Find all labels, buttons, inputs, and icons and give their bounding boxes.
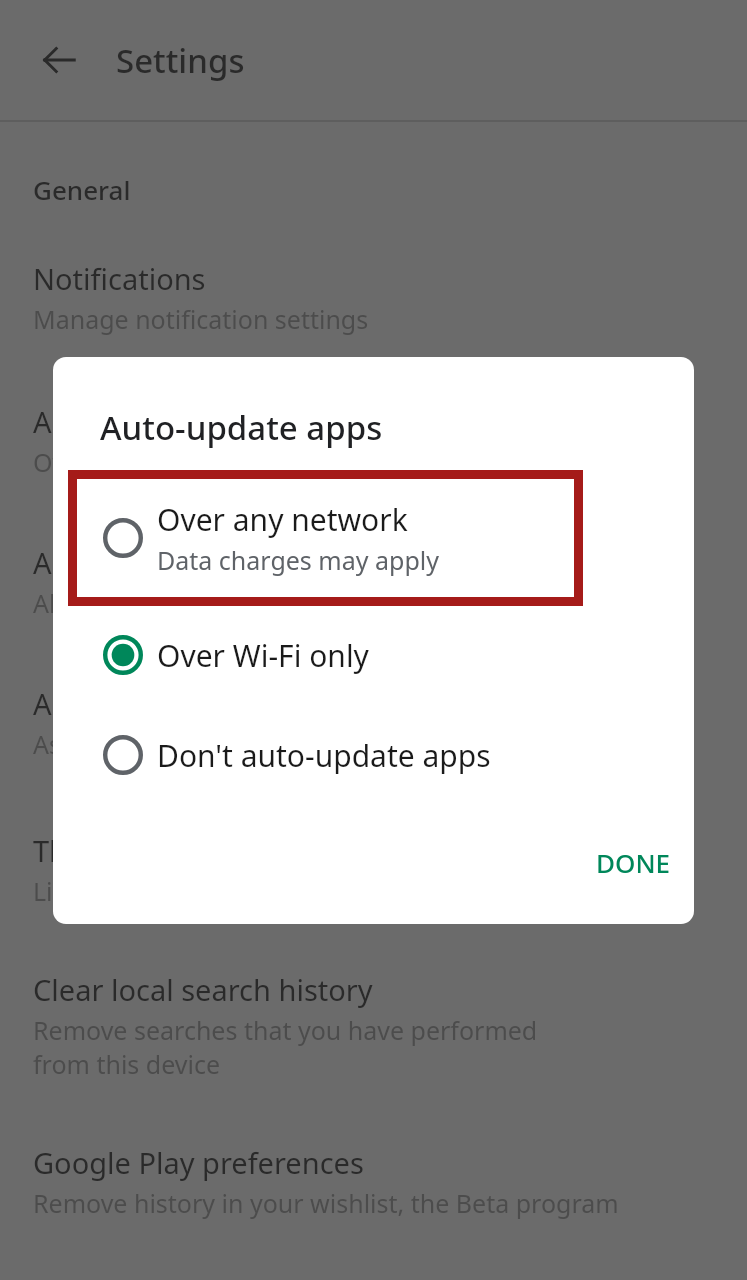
staticText: Clear local search history: [33, 970, 373, 1009]
button[interactable]: Over any network: [68, 470, 583, 606]
staticText: Over Wi-Fi only: [33, 445, 210, 479]
button[interactable]: App download preference: [0, 684, 747, 761]
staticText: DONE: [596, 845, 671, 880]
staticText: Light: [33, 874, 93, 908]
staticText: Remove history in your wishlist, the Bet…: [33, 1186, 619, 1220]
staticText: Auto-play videos: [33, 543, 259, 582]
staticText: Don't auto-update apps: [157, 735, 491, 776]
staticText: Settings: [116, 38, 245, 83]
staticText: from this device: [33, 1047, 221, 1081]
staticText: Remove searches that you have performed: [33, 1013, 538, 1047]
button[interactable]: DONE: [578, 835, 689, 890]
button[interactable]: Notifications: [0, 259, 747, 336]
staticText: Notifications: [33, 259, 206, 298]
button[interactable]: Over Wi-Fi only: [68, 615, 679, 695]
button[interactable]: Theme: [0, 831, 747, 908]
staticText: Theme: [33, 831, 127, 870]
staticText: Ask me every time: [33, 727, 248, 761]
staticText: Auto-update apps: [100, 405, 383, 450]
button[interactable]: Auto-update apps: [0, 402, 747, 479]
button[interactable]: Don't auto-update apps: [68, 715, 679, 795]
button[interactable]: Auto-play videos: [0, 543, 747, 620]
staticText: App download preference: [33, 684, 385, 723]
staticText: General: [33, 172, 131, 207]
button[interactable]: Back: [25, 26, 93, 94]
staticText: Data charges may apply: [157, 543, 439, 577]
staticText: Manage notification settings: [33, 302, 369, 336]
button[interactable]: Google Play preferences: [0, 1143, 747, 1220]
button[interactable]: Clear local search history: [0, 970, 747, 1081]
staticText: Over any network: [157, 499, 408, 540]
staticText: Google Play preferences: [33, 1143, 364, 1182]
staticText: Auto-update apps: [33, 402, 277, 441]
staticText: Over Wi-Fi only: [157, 635, 369, 676]
staticText: Always: [33, 586, 114, 620]
